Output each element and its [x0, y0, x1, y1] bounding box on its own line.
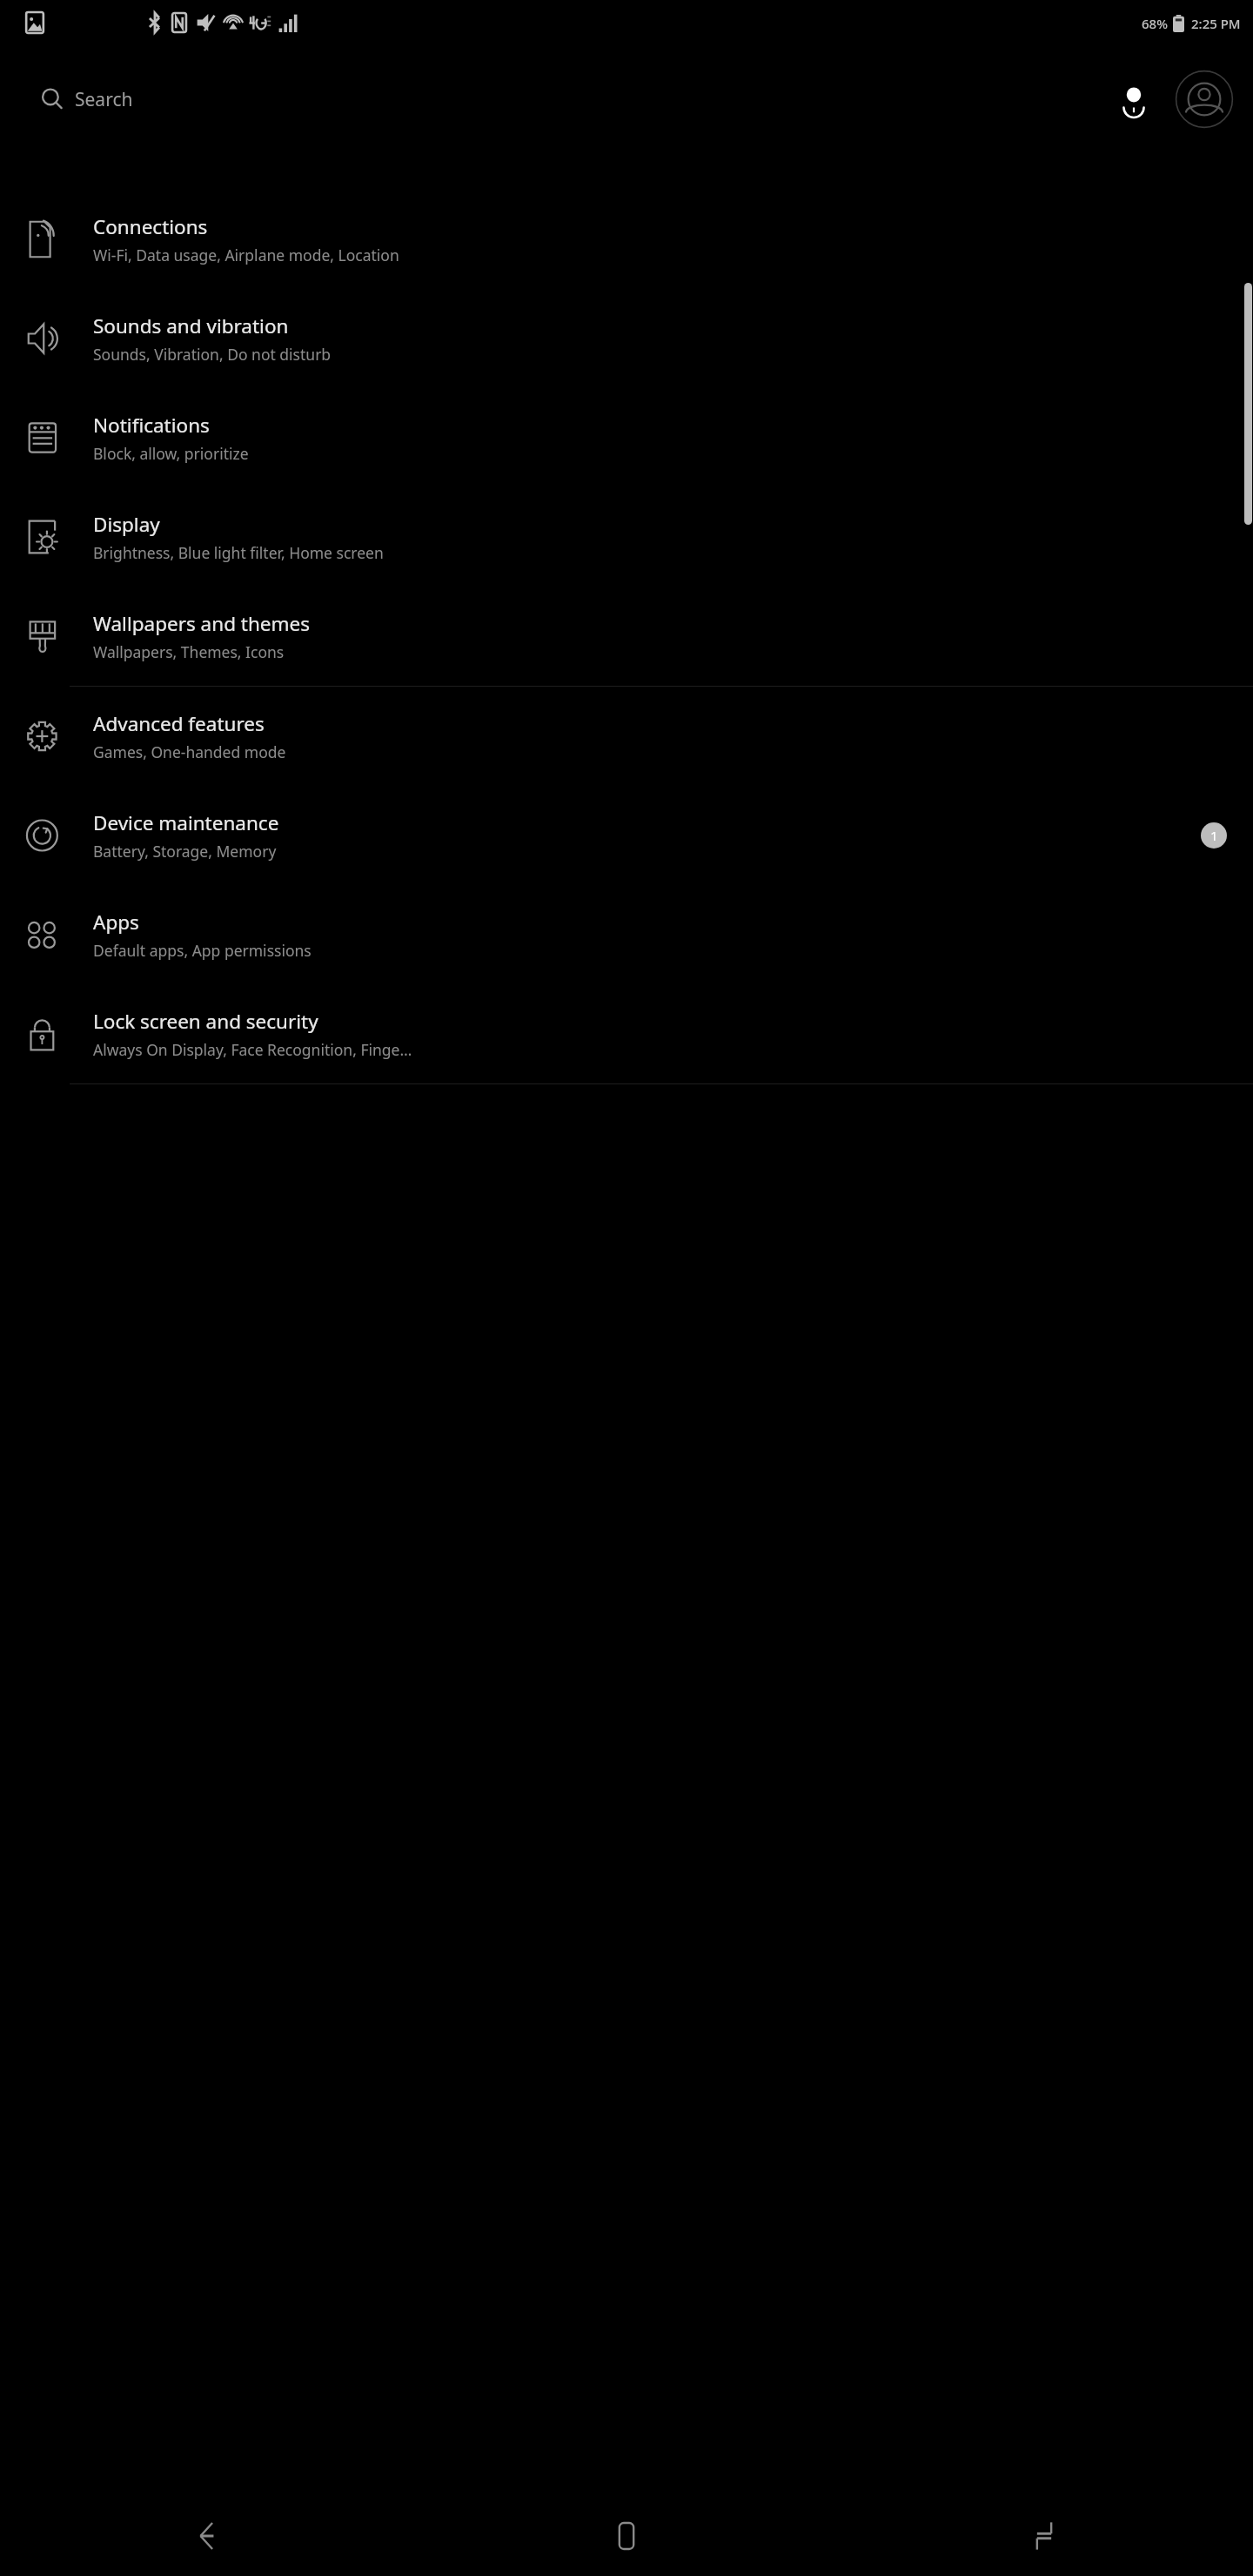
- button[interactable]: Notifications: [0, 388, 1253, 487]
- staticText: Default apps, App permissions: [93, 940, 312, 961]
- button[interactable]: Back: [0, 2496, 418, 2576]
- staticText: Battery, Storage, Memory: [93, 841, 277, 862]
- button[interactable]: Search: [22, 73, 1166, 125]
- staticText: Connections: [93, 213, 208, 240]
- button[interactable]: Account: [1175, 70, 1234, 129]
- button[interactable]: Connections: [0, 190, 1253, 289]
- staticText: Always On Display, Face Recognition, Fin…: [93, 1039, 412, 1060]
- staticText: Advanced features: [93, 710, 265, 737]
- button[interactable]: Voice search: [1119, 84, 1149, 114]
- staticText: Games, One-handed mode: [93, 741, 286, 762]
- staticText: Sounds and vibration: [93, 312, 289, 339]
- staticText: Lock screen and security: [93, 1008, 318, 1035]
- staticText: Search: [75, 87, 133, 112]
- staticText: Apps: [93, 909, 139, 936]
- staticText: Brightness, Blue light filter, Home scre…: [93, 542, 384, 563]
- button[interactable]: Recents: [835, 2496, 1253, 2576]
- button[interactable]: Home: [418, 2496, 835, 2576]
- staticText: Device maintenance: [93, 809, 279, 836]
- staticText: Wi-Fi, Data usage, Airplane mode, Locati…: [93, 245, 399, 265]
- button[interactable]: Advanced features: [0, 687, 1253, 786]
- staticText: Wallpapers, Themes, Icons: [93, 641, 285, 662]
- button[interactable]: Sounds and vibration: [0, 289, 1253, 388]
- staticText: Display: [93, 511, 160, 538]
- staticText: 1: [1210, 827, 1218, 844]
- staticText: Wallpapers and themes: [93, 610, 311, 637]
- staticText: 2:25 PM: [1191, 15, 1241, 32]
- staticText: Notifications: [93, 412, 210, 439]
- staticText: Sounds, Vibration, Do not disturb: [93, 344, 332, 365]
- button[interactable]: Wallpapers and themes: [0, 587, 1253, 686]
- staticText: 68%: [1142, 15, 1168, 32]
- button[interactable]: Apps: [0, 885, 1253, 984]
- staticText: Block, allow, prioritize: [93, 443, 249, 464]
- button[interactable]: Display: [0, 487, 1253, 587]
- button[interactable]: Lock screen and security: [0, 984, 1253, 1083]
- button[interactable]: Device maintenance: [0, 786, 1253, 885]
